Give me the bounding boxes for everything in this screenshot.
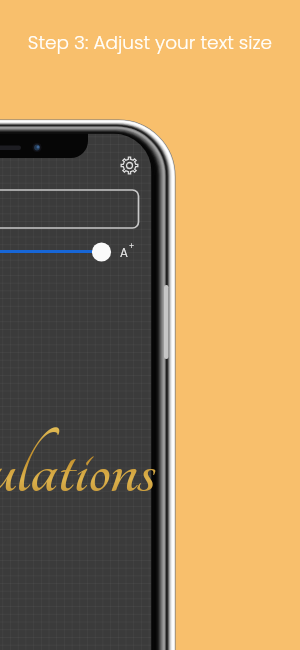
- staticText: Step 3: Adjust your text size: [0, 30, 300, 650]
- staticText: +: [129, 241, 135, 252]
- button[interactable]: Settings: [118, 154, 141, 177]
- staticText: ulations: [0, 426, 156, 512]
- staticText: A: [120, 244, 128, 261]
